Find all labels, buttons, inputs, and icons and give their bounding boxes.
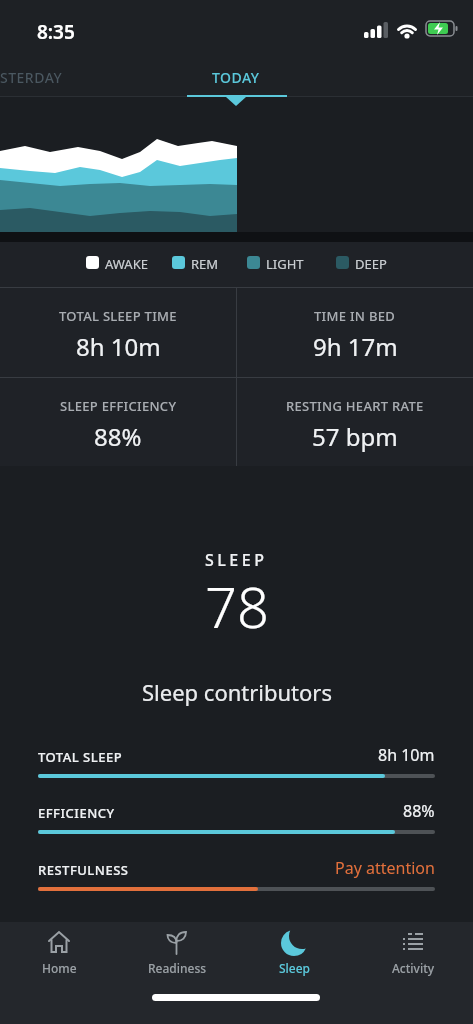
staticText: 9h 17m — [313, 330, 398, 363]
button[interactable]: TODAY — [168, 62, 304, 96]
button[interactable]: TOTAL SLEEP TIME — [0, 288, 236, 377]
staticText: 8h 10m — [378, 744, 435, 766]
staticText: EFFICIENCY — [38, 804, 115, 822]
staticText: Readiness — [148, 960, 207, 976]
staticText: Home — [42, 960, 77, 976]
button[interactable]: EFFICIENCY — [38, 800, 435, 842]
button[interactable]: Home — [9, 922, 109, 984]
staticText: TOTAL SLEEP — [38, 748, 123, 766]
staticText: STERDAY — [0, 68, 63, 87]
staticText: 88% — [403, 800, 435, 822]
staticText: 78 — [205, 568, 269, 644]
button[interactable]: TIME IN BED — [237, 288, 473, 377]
button[interactable]: Readiness — [127, 922, 227, 984]
staticText: TOTAL SLEEP TIME — [59, 307, 177, 325]
staticText: AWAKE — [105, 255, 148, 273]
button[interactable]: RESTING HEART RATE — [237, 378, 473, 467]
button[interactable]: TOTAL SLEEP — [38, 744, 435, 786]
staticText: SLEEP — [205, 549, 268, 571]
staticText: Sleep — [279, 960, 311, 976]
staticText: TIME IN BED — [314, 307, 396, 325]
button[interactable]: SLEEP EFFICIENCY — [0, 378, 236, 467]
staticText: 88% — [94, 420, 142, 453]
staticText: TODAY — [212, 68, 260, 87]
staticText: LIGHT — [266, 255, 304, 273]
staticText: REM — [191, 255, 219, 273]
staticText: 8:35 — [37, 19, 75, 45]
staticText: RESTING HEART RATE — [286, 397, 424, 415]
button[interactable]: Activity — [363, 922, 463, 984]
staticText: 57 bpm — [312, 420, 398, 453]
staticText: SLEEP EFFICIENCY — [60, 397, 177, 415]
staticText: RESTFULNESS — [38, 861, 129, 879]
button[interactable]: Sleep — [245, 922, 345, 984]
button[interactable]: STERDAY — [0, 62, 90, 92]
staticText: DEEP — [355, 255, 387, 273]
button[interactable]: RESTFULNESS — [38, 857, 435, 899]
staticText: Pay attention — [335, 857, 435, 879]
staticText: Sleep contributors — [142, 677, 332, 707]
staticText: 8h 10m — [76, 330, 161, 363]
staticText: Activity — [392, 960, 435, 976]
